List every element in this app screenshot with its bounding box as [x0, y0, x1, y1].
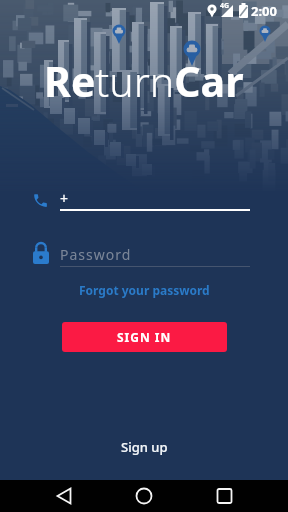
button[interactable]: Password	[58, 242, 250, 268]
staticText: Sign up	[121, 438, 168, 456]
staticText: Forgot your password	[79, 282, 210, 298]
button[interactable]: SIGN IN	[62, 322, 227, 352]
staticText: ReturnCar	[44, 53, 244, 109]
staticText: 4G	[220, 1, 230, 11]
staticText: +	[60, 189, 69, 208]
staticText: 2:00	[251, 2, 277, 20]
button[interactable]: Forgot your password	[79, 282, 210, 298]
staticText: Password	[60, 245, 132, 264]
button[interactable]: Sign up	[121, 438, 168, 456]
button[interactable]	[128, 480, 160, 512]
button[interactable]	[208, 480, 240, 512]
button[interactable]: +	[58, 186, 250, 212]
staticText: SIGN IN	[117, 329, 172, 345]
button[interactable]	[48, 480, 80, 512]
